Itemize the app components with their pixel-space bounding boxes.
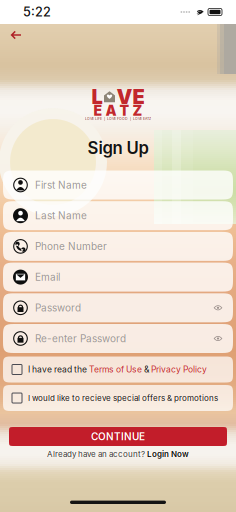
staticText: Already have an account?	[47, 449, 147, 459]
button[interactable]: Phone Number	[3, 232, 233, 261]
button[interactable]: Back	[4, 24, 28, 46]
button[interactable]: CONTINUE	[9, 427, 227, 446]
staticText: Phone Number	[35, 240, 107, 252]
staticText: Last Name	[35, 210, 87, 222]
staticText: Password	[35, 302, 81, 314]
staticText: I have read the	[28, 364, 89, 375]
button[interactable]: Password	[3, 293, 233, 322]
button[interactable]: Re-enter Password	[3, 324, 233, 353]
staticText: Privacy Policy	[151, 364, 207, 375]
staticText: VE	[116, 85, 144, 109]
staticText: CONTINUE	[91, 430, 145, 443]
button[interactable]: First Name	[3, 170, 233, 199]
button[interactable]: I have read the	[3, 356, 233, 382]
staticText: Email	[35, 271, 60, 283]
staticText: First Name	[35, 179, 87, 191]
staticText: 5:22	[23, 4, 51, 20]
staticText: L	[91, 85, 102, 109]
staticText: E A T Z	[93, 102, 142, 119]
button[interactable]: Last Name	[3, 201, 233, 230]
staticText: Sign Up	[87, 138, 148, 158]
staticText: I would like to recieve special offers &…	[28, 393, 218, 403]
staticText: Re-enter Password	[35, 332, 126, 345]
staticText: &	[142, 364, 151, 375]
button[interactable]: Already have an account?	[47, 446, 189, 462]
button[interactable]: I would like to recieve special offers &…	[3, 385, 233, 411]
staticText: Terms of Use	[89, 364, 142, 375]
staticText: Login Now	[147, 449, 189, 459]
staticText: LOVE LIFE | LOVE FOOD | LOVE EATZ	[85, 117, 151, 121]
button[interactable]: Email	[3, 263, 233, 292]
